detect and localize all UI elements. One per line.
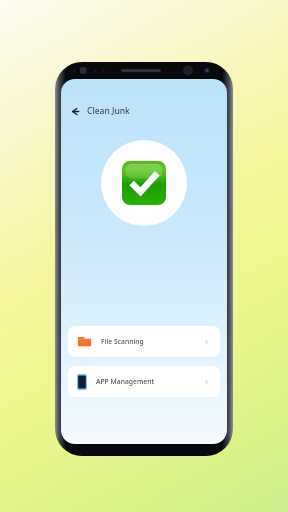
button[interactable]: Back (61, 100, 227, 122)
button[interactable]: APP Management (68, 366, 220, 397)
button[interactable]: File Scanning (68, 326, 220, 357)
other: Back (70, 106, 81, 117)
staticText: APP Management (96, 377, 155, 386)
staticText: File Scanning (101, 337, 144, 346)
staticText: Clean Junk (87, 105, 130, 117)
